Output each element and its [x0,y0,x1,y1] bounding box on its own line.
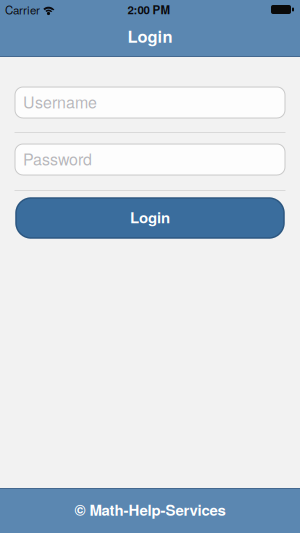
button[interactable]: Login [16,198,284,238]
staticText: Login [127,24,172,48]
staticText: Carrier [5,1,40,18]
staticText: Username [23,90,97,113]
staticText: Login [130,206,170,228]
button[interactable]: Password [15,144,285,175]
staticText: 2:00 PM [127,1,170,18]
staticText: © Math-Help-Services [74,499,225,520]
button[interactable]: Username [15,87,285,118]
staticText: Password [23,147,92,170]
